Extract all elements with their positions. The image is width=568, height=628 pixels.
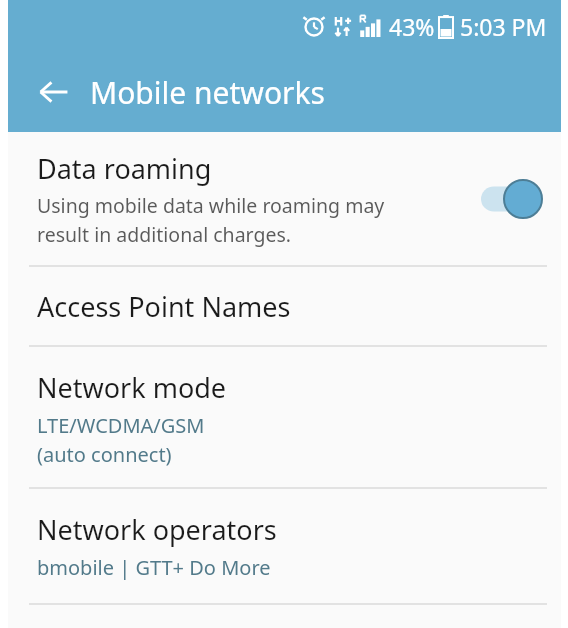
staticText: 43% <box>389 11 435 42</box>
button[interactable]: Back <box>30 68 78 116</box>
button[interactable]: Data roaming toggle <box>481 176 539 222</box>
staticText: Using mobile data while roaming may <box>37 192 385 219</box>
staticText: Network operators <box>37 511 277 548</box>
button[interactable]: Data roaming <box>8 132 561 265</box>
staticText: Access Point Names <box>37 288 291 325</box>
button[interactable]: Access Point Names <box>8 267 561 345</box>
staticText: (auto connect) <box>37 441 172 468</box>
staticText: LTE/WCDMA/GSM <box>37 412 205 439</box>
staticText: 5:03 PM <box>460 11 547 42</box>
button[interactable]: Network mode <box>8 347 561 487</box>
staticText: Network mode <box>37 369 227 406</box>
staticText: Data roaming <box>37 150 212 187</box>
staticText: result in additional charges. <box>37 221 292 248</box>
staticText: Mobile networks <box>90 72 325 113</box>
staticText: bmobile | GTT+ Do More <box>37 554 271 581</box>
button[interactable]: Network operators <box>8 489 561 603</box>
